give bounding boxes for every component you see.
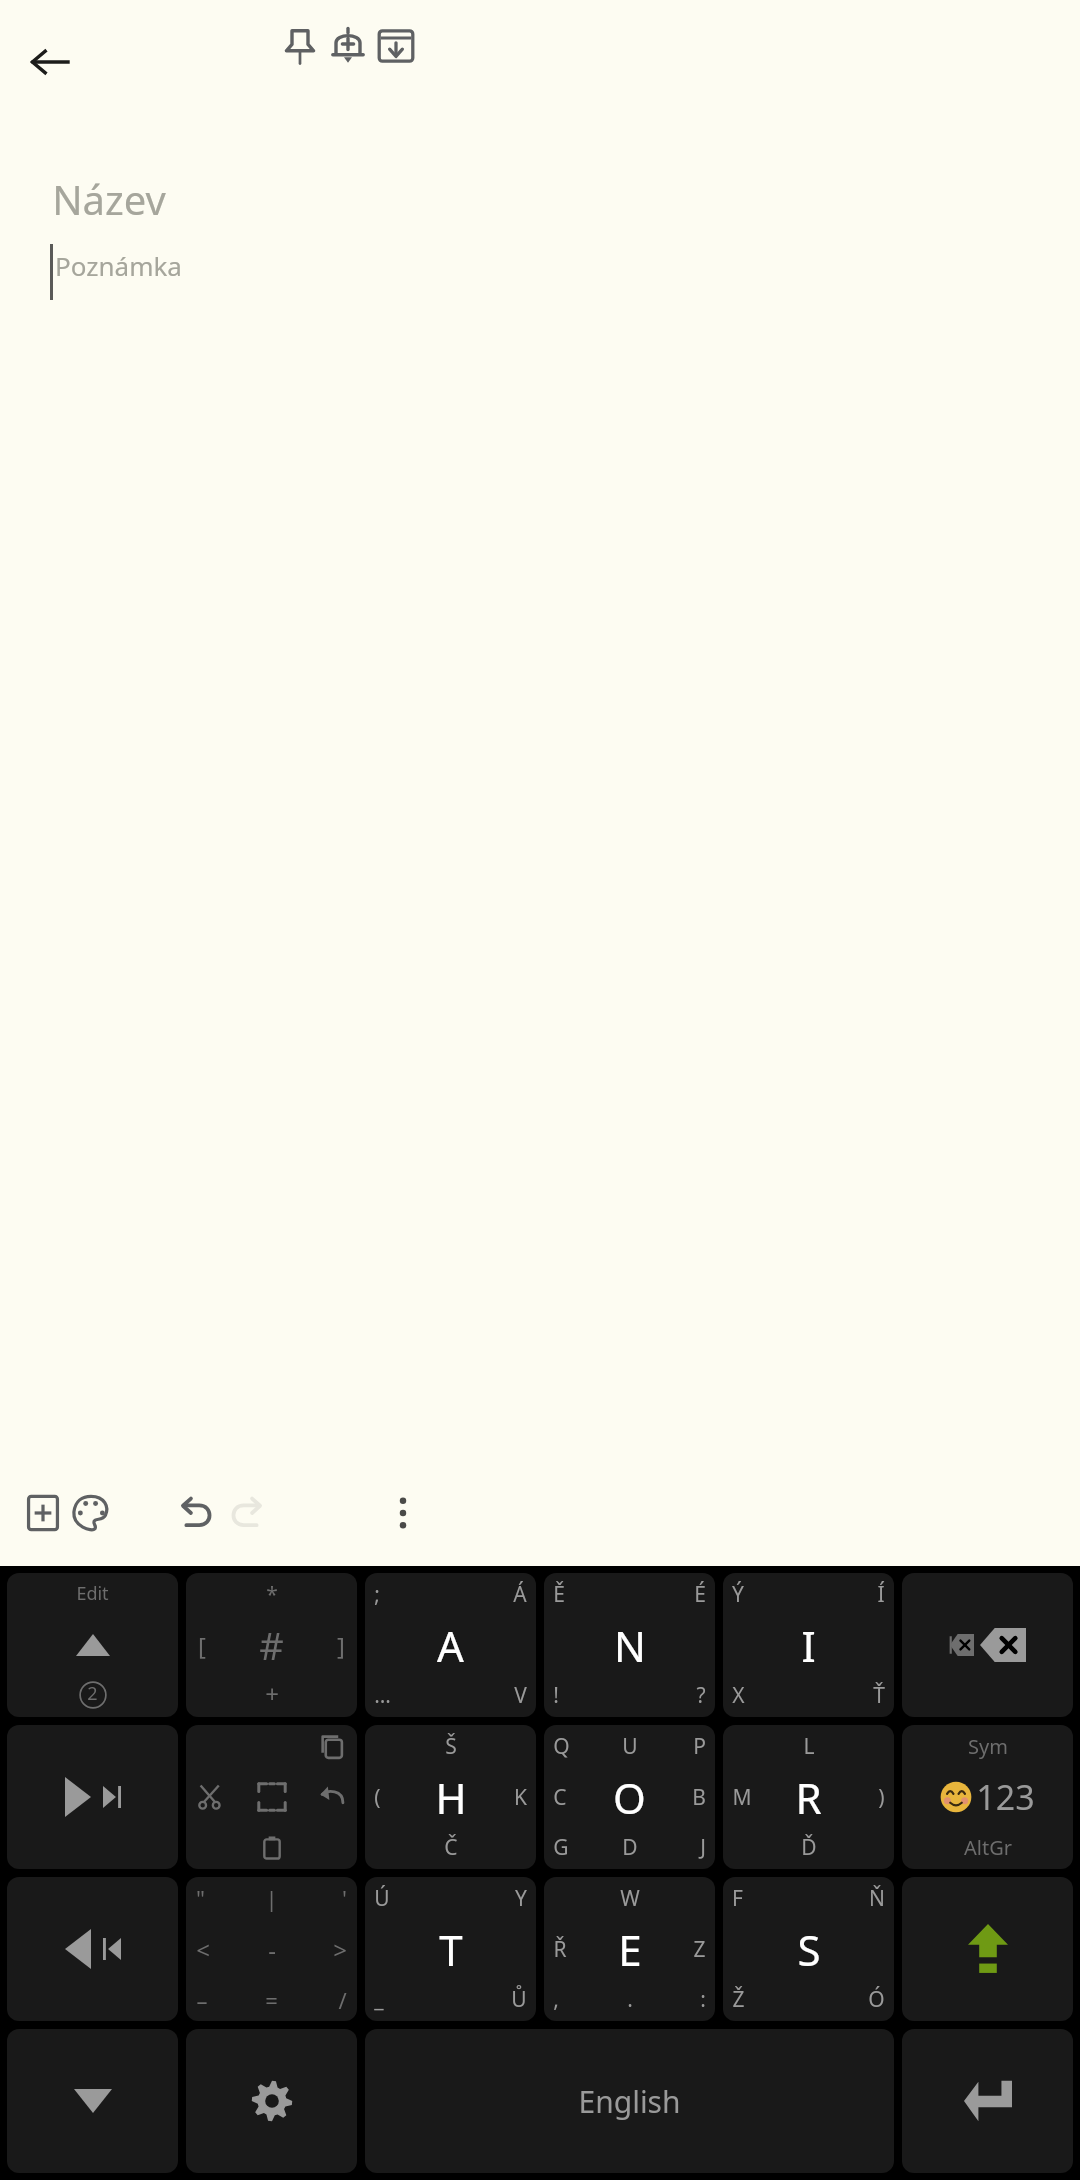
button[interactable]: Sym — [902, 1725, 1073, 1869]
button[interactable]: " — [186, 1877, 357, 2021]
staticText: Ů — [511, 1985, 527, 2014]
staticText: 2 — [87, 1681, 98, 1706]
button[interactable]: R — [723, 1725, 894, 1869]
button[interactable]: Back — [14, 26, 86, 98]
staticText: L — [803, 1732, 815, 1761]
staticText: . — [627, 1985, 633, 2014]
button[interactable] — [902, 2029, 1073, 2173]
button[interactable]: Add reminder — [312, 10, 384, 82]
staticText: ; — [374, 1580, 380, 1609]
staticText: Ó — [868, 1985, 885, 2014]
button[interactable]: S — [723, 1877, 894, 2021]
staticText: Ě — [553, 1580, 565, 1609]
staticText: : — [700, 1985, 706, 2014]
button[interactable]: I — [723, 1573, 894, 1717]
button[interactable]: Edit — [7, 1573, 178, 1717]
button[interactable] — [902, 1573, 1073, 1717]
button[interactable]: English — [365, 2029, 894, 2173]
button[interactable]: Add attachment — [7, 1460, 79, 1566]
staticText: ! — [553, 1681, 559, 1710]
staticText: N — [614, 1617, 646, 1674]
button[interactable]: O — [544, 1725, 715, 1869]
staticText: Ň — [869, 1884, 885, 1913]
button[interactable]: Redo — [210, 1460, 282, 1566]
staticText: A — [437, 1617, 464, 1674]
staticText: É — [694, 1580, 706, 1609]
staticText: J — [700, 1833, 706, 1862]
staticText: Š — [445, 1732, 457, 1761]
staticText: ( — [374, 1783, 381, 1812]
staticText: [ — [198, 1629, 206, 1662]
button[interactable]: Archive — [360, 10, 432, 82]
button[interactable] — [7, 1725, 178, 1869]
button[interactable]: T — [365, 1877, 536, 2021]
staticText: T — [439, 1921, 463, 1978]
button[interactable]: A — [365, 1573, 536, 1717]
button[interactable]: Change colour — [55, 1460, 127, 1566]
staticText: Sym — [968, 1733, 1008, 1760]
staticText: AltGr — [964, 1834, 1012, 1861]
staticText: | — [265, 1883, 278, 1913]
staticText: # — [259, 1619, 284, 1671]
staticText: P — [693, 1732, 706, 1761]
staticText: ? — [696, 1681, 706, 1710]
button[interactable]: * — [186, 1573, 357, 1717]
button[interactable] — [186, 2029, 357, 2173]
staticText: Č — [444, 1833, 458, 1862]
button[interactable]: More options — [367, 1460, 439, 1566]
staticText: R — [795, 1769, 822, 1826]
staticText: O — [613, 1769, 646, 1826]
staticText: – — [196, 1985, 208, 2015]
button[interactable] — [7, 1877, 178, 2021]
staticText: V — [514, 1681, 527, 1710]
staticText: Ď — [801, 1833, 817, 1862]
button[interactable]: Undo — [161, 1460, 233, 1566]
staticText: F — [732, 1884, 743, 1913]
staticText: Edit — [76, 1581, 109, 1606]
staticText: ] — [337, 1629, 345, 1662]
staticText: B — [692, 1783, 706, 1812]
button[interactable]: N — [544, 1573, 715, 1717]
staticText: = — [265, 1985, 278, 2015]
button[interactable]: Název — [52, 172, 166, 226]
staticText: - — [268, 1933, 276, 1966]
staticText: English — [578, 2081, 681, 2122]
staticText: W — [620, 1884, 640, 1913]
staticText: 123 — [976, 1774, 1035, 1820]
staticText: Z — [693, 1935, 706, 1964]
staticText: M — [732, 1783, 752, 1812]
staticText: I — [801, 1617, 816, 1674]
staticText: Ř — [553, 1935, 567, 1964]
button[interactable]: Poznámka — [50, 248, 182, 304]
staticText: Ž — [732, 1985, 745, 2014]
staticText: Y — [515, 1884, 527, 1913]
button[interactable] — [7, 2029, 178, 2173]
staticText: " — [196, 1883, 205, 1913]
button[interactable] — [186, 1725, 357, 1869]
staticText: E — [618, 1921, 642, 1978]
staticText: Ú — [374, 1884, 390, 1913]
staticText: Poznámka — [55, 248, 182, 283]
staticText: K — [514, 1783, 527, 1812]
staticText: Ť — [873, 1681, 885, 1710]
staticText: , — [553, 1985, 559, 2014]
button[interactable]: E — [544, 1877, 715, 2021]
staticText: ) — [878, 1783, 885, 1812]
staticText: S — [797, 1921, 821, 1978]
staticText: … — [374, 1681, 391, 1710]
staticText: Á — [513, 1580, 527, 1609]
staticText: + — [265, 1677, 279, 1710]
staticText: D — [622, 1833, 638, 1862]
staticText: C — [553, 1783, 567, 1812]
staticText: / — [338, 1985, 347, 2015]
button[interactable] — [902, 1877, 1073, 2021]
staticText: Ý — [732, 1580, 744, 1609]
staticText: > — [333, 1933, 347, 1966]
staticText: < — [196, 1933, 210, 1966]
staticText: H — [435, 1769, 467, 1826]
button[interactable]: H — [365, 1725, 536, 1869]
staticText: G — [553, 1833, 569, 1862]
staticText: X — [732, 1681, 745, 1710]
button[interactable]: Pin note — [264, 10, 336, 82]
staticText: _ — [374, 1985, 384, 2014]
